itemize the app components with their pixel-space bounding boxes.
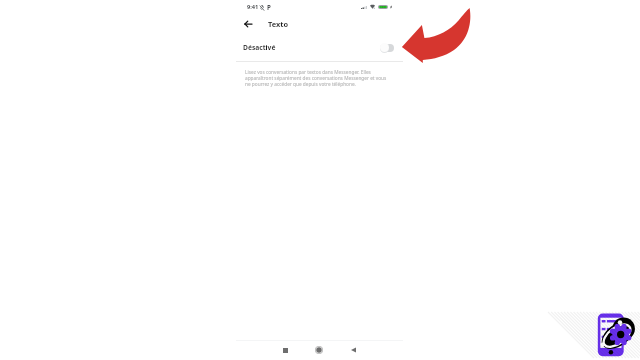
button[interactable]: Home bbox=[313, 344, 325, 356]
staticText: Lisez vos conversations par textos dans … bbox=[245, 69, 389, 87]
staticText: Désactivé bbox=[243, 43, 276, 52]
button[interactable]: Recents bbox=[279, 344, 291, 356]
button[interactable]: Back bbox=[347, 344, 359, 356]
staticText: 9:41 bbox=[247, 3, 259, 11]
staticText: P bbox=[267, 3, 271, 11]
button[interactable]: Désactivé bbox=[236, 36, 403, 60]
button[interactable]: Back bbox=[241, 17, 254, 30]
staticText: Texto bbox=[268, 19, 289, 29]
